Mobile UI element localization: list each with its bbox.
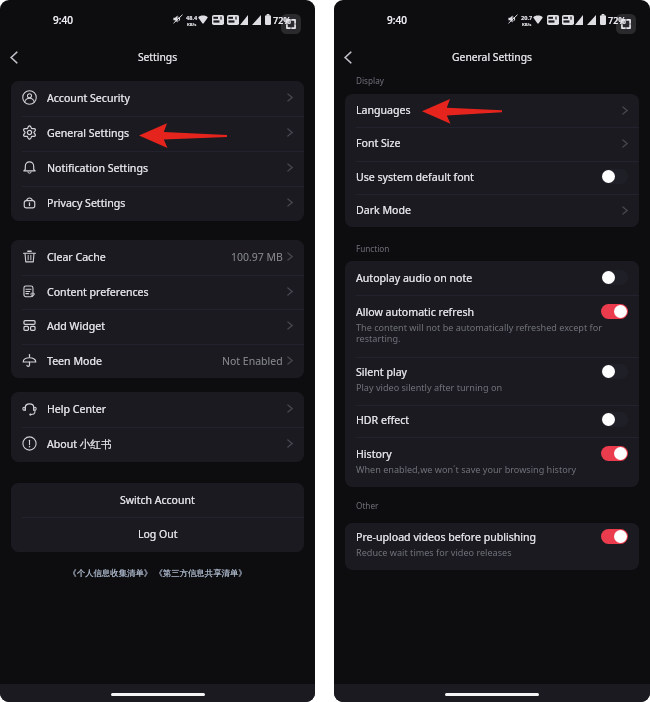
- button[interactable]: Teen Mode: [11, 344, 304, 378]
- staticText: Languages: [356, 103, 411, 117]
- staticText: HDR effect: [356, 413, 410, 427]
- button[interactable]: Disabled: [601, 412, 628, 427]
- staticText: Notification Settings: [47, 161, 148, 175]
- staticText: Allow automatic refresh: [356, 305, 475, 319]
- staticText: General Settings: [47, 126, 130, 140]
- button[interactable]: Languages: [345, 94, 639, 127]
- staticText: 9:40: [387, 13, 407, 27]
- staticText: 《个人信息收集清单》 《第三方信息共享清单》: [0, 567, 315, 578]
- staticText: Content preferences: [47, 285, 149, 299]
- button[interactable]: Notification Settings: [11, 151, 304, 186]
- staticText: KB/s: [187, 22, 197, 28]
- button[interactable]: Log Out: [11, 517, 304, 551]
- button[interactable]: Use system default font: [345, 161, 639, 194]
- staticText: 100.97 MB: [231, 250, 283, 264]
- button[interactable]: Switch Account: [11, 483, 304, 517]
- staticText: Teen Mode: [47, 354, 102, 368]
- button[interactable]: Silent play: [345, 357, 639, 406]
- staticText: Privacy Settings: [47, 196, 126, 210]
- staticText: Use system default font: [356, 170, 474, 184]
- staticText: Settings: [0, 50, 315, 64]
- button[interactable]: Back: [2, 45, 26, 69]
- button[interactable]: Add Widget: [11, 309, 304, 344]
- button[interactable]: Font Size: [345, 127, 639, 160]
- button[interactable]: General Settings: [11, 116, 304, 151]
- staticText: Reduce wait times for video releases: [356, 546, 512, 558]
- staticText: Help Center: [47, 402, 107, 416]
- button[interactable]: Clear Cache: [11, 240, 304, 275]
- button[interactable]: Disabled: [601, 169, 628, 184]
- button[interactable]: Account Security: [11, 81, 304, 116]
- button[interactable]: Full screen: [616, 14, 636, 34]
- staticText: Dark Mode: [356, 203, 411, 217]
- staticText: Switch Account: [120, 493, 195, 507]
- button[interactable]: Enabled: [601, 529, 628, 544]
- staticText: Not Enabled: [222, 354, 283, 368]
- button[interactable]: Enabled: [601, 304, 628, 319]
- staticText: Play video silently after turning on: [356, 381, 503, 393]
- button[interactable]: Disabled: [601, 364, 628, 379]
- staticText: About 小红书: [47, 437, 112, 451]
- staticText: Font Size: [356, 136, 401, 150]
- button[interactable]: HDR effect: [345, 405, 639, 437]
- staticText: Add Widget: [47, 319, 105, 333]
- button[interactable]: Back: [336, 45, 360, 69]
- button[interactable]: Enabled: [601, 446, 628, 461]
- button[interactable]: Help Center: [11, 392, 304, 427]
- staticText: 20.7: [521, 14, 533, 22]
- button[interactable]: Pre-upload videos before publishing: [345, 523, 639, 570]
- staticText: 72%: [608, 14, 626, 26]
- staticText: 9:40: [53, 13, 73, 27]
- staticText: Function: [356, 243, 390, 254]
- staticText: General Settings: [334, 50, 650, 64]
- button[interactable]: Autoplay audio on note: [345, 261, 639, 295]
- button[interactable]: History: [345, 437, 639, 487]
- staticText: 48.4: [186, 14, 198, 22]
- staticText: Autoplay audio on note: [356, 271, 473, 285]
- staticText: KB/s: [522, 22, 532, 28]
- button[interactable]: About 小红书: [11, 427, 304, 462]
- staticText: Other: [356, 500, 379, 511]
- staticText: Display: [356, 75, 384, 86]
- button[interactable]: Dark Mode: [345, 194, 639, 227]
- staticText: Account Security: [47, 91, 130, 105]
- staticText: 72%: [273, 14, 291, 26]
- button[interactable]: Content preferences: [11, 275, 304, 310]
- button[interactable]: Full screen: [281, 14, 301, 34]
- staticText: Pre-upload videos before publishing: [356, 530, 537, 544]
- staticText: Log Out: [138, 527, 178, 541]
- button[interactable]: Allow automatic refresh: [345, 295, 639, 357]
- button[interactable]: Disabled: [601, 270, 628, 285]
- staticText: Silent play: [356, 365, 407, 379]
- staticText: History: [356, 447, 392, 461]
- staticText: When enabled,we won´t save your browsing…: [356, 463, 577, 475]
- staticText: Clear Cache: [47, 250, 106, 264]
- staticText: The content will not be automatically re…: [356, 321, 602, 344]
- button[interactable]: Privacy Settings: [11, 186, 304, 221]
